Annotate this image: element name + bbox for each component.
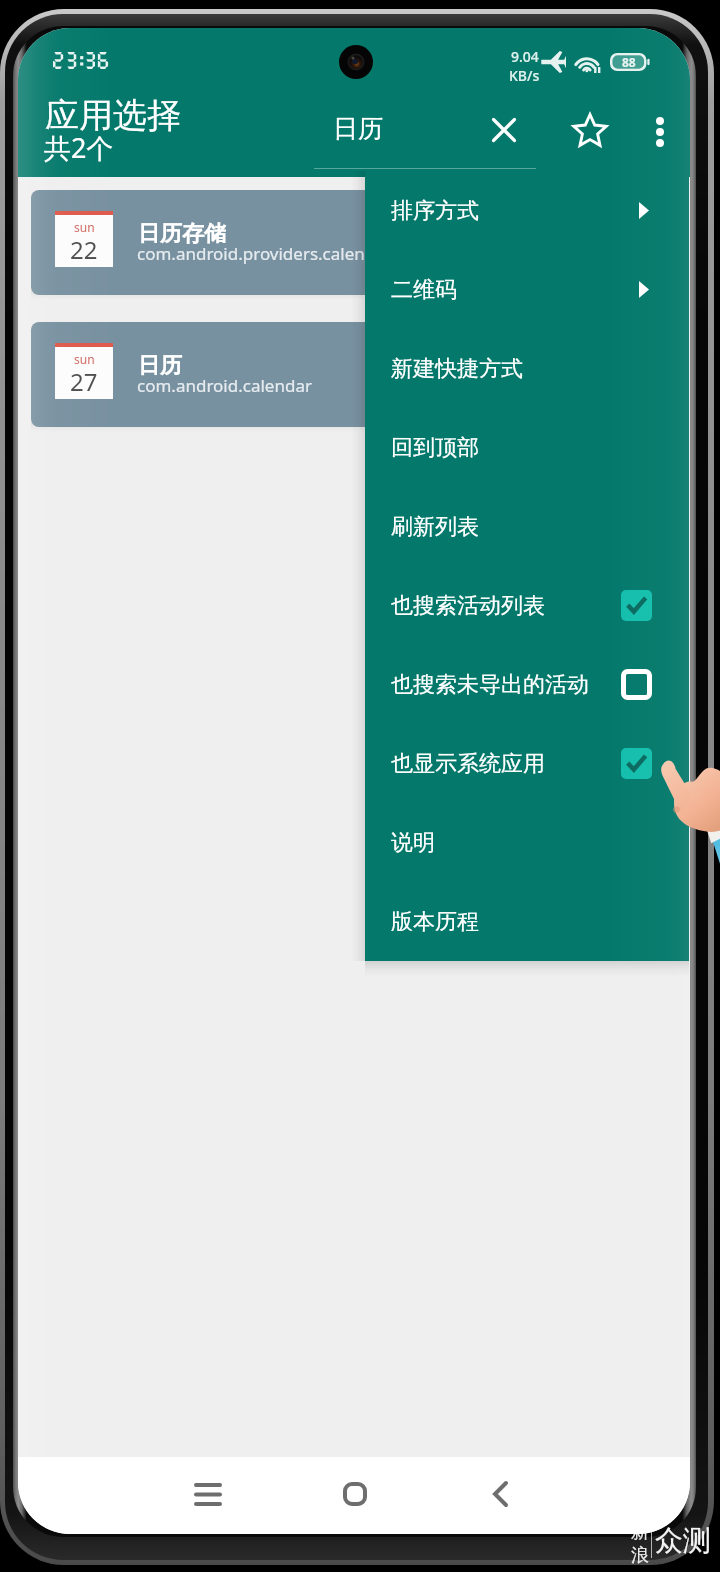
- staticText: 新建快捷方式: [391, 355, 523, 383]
- staticText: 日历: [333, 113, 383, 144]
- staticText: 说明: [391, 829, 435, 857]
- button[interactable]: 刷新列表: [365, 487, 689, 566]
- staticText: com.android.calendar: [137, 374, 312, 397]
- staticText: 浪: [631, 1544, 649, 1567]
- button[interactable]: More options: [634, 106, 686, 158]
- staticText: 二维码: [391, 276, 457, 304]
- button[interactable]: 日历: [314, 102, 536, 170]
- button[interactable]: 新建快捷方式: [365, 329, 689, 408]
- staticText: 88: [622, 54, 636, 70]
- button[interactable]: 排序方式: [365, 171, 689, 250]
- staticText: sun: [74, 351, 95, 367]
- button[interactable]: 说明: [365, 803, 689, 882]
- staticText: 众测: [655, 1523, 711, 1558]
- staticText: 共2个: [44, 129, 114, 166]
- button[interactable]: Recents: [178, 1464, 238, 1524]
- staticText: 应用选择: [45, 94, 181, 137]
- button[interactable]: 版本历程: [365, 882, 689, 961]
- staticText: 也搜索未导出的活动: [391, 671, 589, 699]
- staticText: KB/s: [509, 66, 540, 85]
- button[interactable]: 也搜索活动列表: [365, 566, 689, 645]
- staticText: sun: [74, 219, 95, 235]
- button[interactable]: Home: [325, 1464, 385, 1524]
- staticText: 刷新列表: [391, 513, 479, 541]
- button[interactable]: Back: [470, 1464, 530, 1524]
- staticText: 回到顶部: [391, 434, 479, 462]
- staticText: 也显示系统应用: [391, 750, 545, 778]
- button[interactable]: 二维码: [365, 250, 689, 329]
- button[interactable]: Favorite: [564, 104, 616, 156]
- staticText: 排序方式: [391, 197, 479, 225]
- button[interactable]: Clear search: [478, 104, 530, 156]
- button[interactable]: sun: [31, 190, 677, 295]
- staticText: 也搜索活动列表: [391, 592, 545, 620]
- button[interactable]: sun: [31, 322, 677, 427]
- staticText: 9.04: [511, 47, 539, 66]
- staticText: 新: [631, 1521, 649, 1544]
- button[interactable]: 也显示系统应用: [365, 724, 689, 803]
- staticText: 27: [70, 365, 98, 398]
- staticText: com.android.providers.calendar: [137, 242, 392, 265]
- button[interactable]: 也搜索未导出的活动: [365, 645, 689, 724]
- staticText: 日历: [138, 352, 182, 380]
- button[interactable]: 回到顶部: [365, 408, 689, 487]
- staticText: 日历存储: [138, 220, 226, 248]
- staticText: 版本历程: [391, 908, 479, 936]
- staticText: 22: [70, 233, 98, 266]
